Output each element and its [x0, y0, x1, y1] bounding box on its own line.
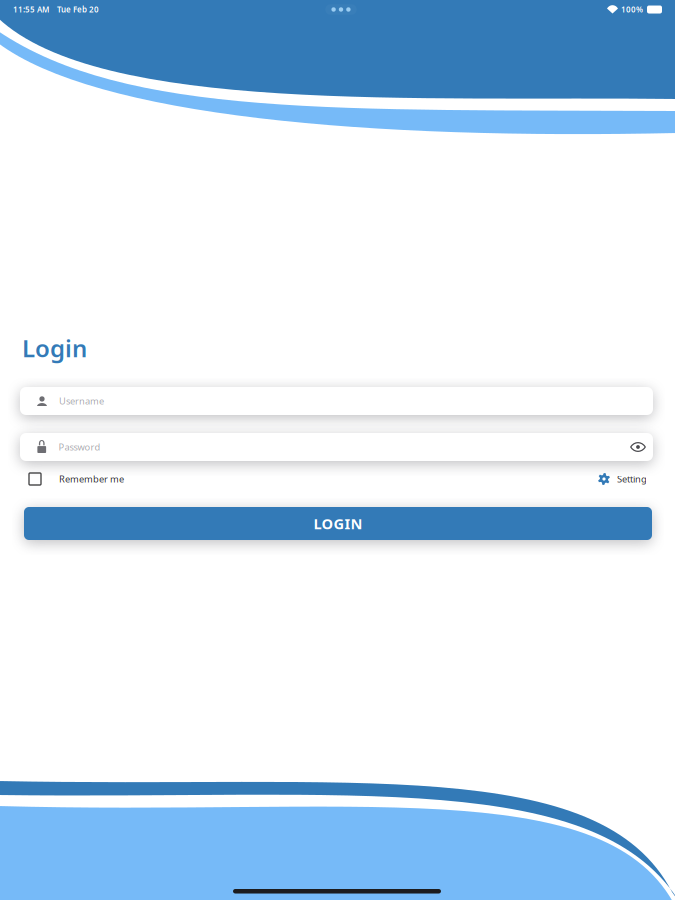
- staticText: 11:55 AM: [13, 4, 49, 15]
- button[interactable]: Show password: [627, 439, 649, 455]
- button[interactable]: Setting: [521, 470, 647, 488]
- button[interactable]: LOGIN: [24, 507, 652, 540]
- button[interactable]: Remember me: [29, 470, 329, 488]
- staticText: Username: [59, 395, 104, 407]
- staticText: LOGIN: [313, 514, 362, 533]
- staticText: Tue Feb 20: [57, 4, 99, 15]
- staticText: Login: [22, 332, 87, 364]
- staticText: Remember me: [59, 473, 124, 485]
- staticText: 100%: [621, 4, 643, 15]
- staticText: Setting: [617, 473, 647, 485]
- staticText: Password: [58, 441, 100, 453]
